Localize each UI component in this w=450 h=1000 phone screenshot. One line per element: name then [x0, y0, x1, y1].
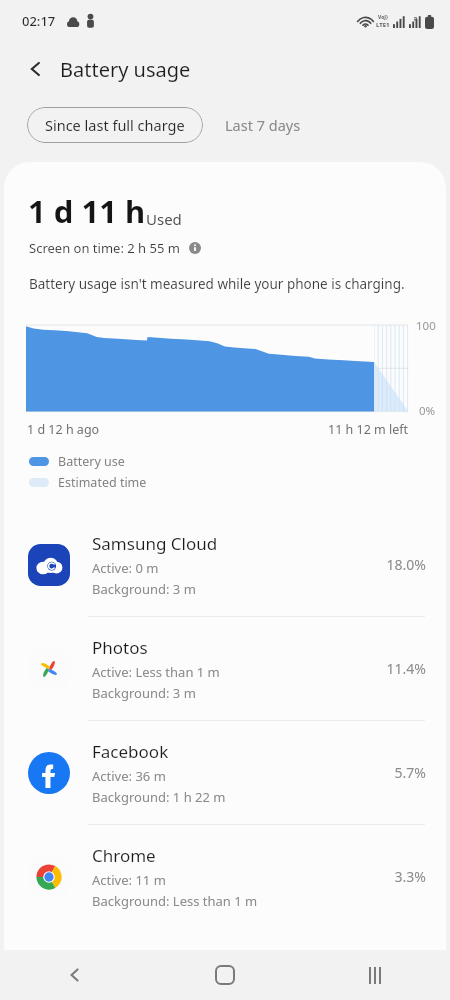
staticText: Photos: [92, 636, 148, 659]
staticText: VoJ): [378, 14, 388, 21]
button[interactable]: Since last full charge: [27, 107, 203, 143]
staticText: 1 d 12 h ago: [27, 421, 100, 438]
staticText: Estimated time: [58, 474, 147, 491]
staticText: R: [414, 16, 418, 23]
staticText: Samsung Cloud: [92, 532, 218, 555]
staticText: Background: 3 m: [92, 580, 196, 598]
button[interactable]: Home: [150, 950, 300, 1000]
button[interactable]: Back: [16, 49, 56, 89]
button[interactable]: Recent apps: [300, 950, 450, 1000]
staticText: 1 d 11 h: [28, 190, 146, 232]
button[interactable]: Info: [186, 239, 204, 257]
button[interactable]: Back: [0, 950, 150, 1000]
staticText: Since last full charge: [45, 115, 185, 135]
staticText: 0%: [419, 403, 436, 419]
button[interactable]: Samsung Cloud: [4, 513, 446, 616]
button[interactable]: Last 7 days: [203, 107, 323, 143]
button[interactable]: Facebook: [4, 721, 446, 824]
staticText: 100: [416, 318, 436, 334]
staticText: 5.7%: [394, 763, 426, 782]
staticText: Battery usage: [60, 56, 191, 83]
staticText: Background: 1 h 22 m: [92, 788, 226, 806]
staticText: Used: [146, 209, 182, 229]
staticText: Active: 0 m: [92, 559, 159, 577]
staticText: Facebook: [92, 740, 169, 763]
staticText: Screen on time: 2 h 55 m: [29, 239, 180, 257]
staticText: 11.4%: [386, 659, 426, 678]
staticText: Background: Less than 1 m: [92, 892, 258, 910]
staticText: 11 h 12 m left: [328, 421, 409, 438]
staticText: 02:17: [22, 12, 56, 30]
button[interactable]: Chrome: [4, 825, 446, 928]
staticText: Battery use: [58, 453, 125, 470]
button[interactable]: Photos: [4, 617, 446, 720]
staticText: Last 7 days: [225, 115, 301, 135]
staticText: Background: 3 m: [92, 684, 196, 702]
staticText: Active: 11 m: [92, 871, 166, 889]
staticText: Battery usage isn't measured while your …: [29, 275, 405, 293]
staticText: Chrome: [92, 844, 156, 867]
staticText: 18.0%: [386, 555, 426, 574]
staticText: LTE1: [376, 21, 390, 29]
staticText: Active: 36 m: [92, 767, 166, 785]
staticText: Active: Less than 1 m: [92, 663, 220, 681]
staticText: 3.3%: [394, 867, 426, 886]
